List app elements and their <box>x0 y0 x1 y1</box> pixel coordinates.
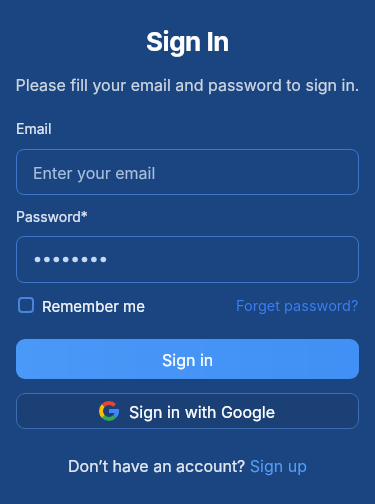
staticText: Sign in <box>162 350 214 369</box>
staticText: Enter your email <box>33 163 156 182</box>
staticText: Please fill your email and password to s… <box>0 75 375 94</box>
staticText: Sign in with Google <box>129 402 276 421</box>
staticText: Don’t have an account? Sign up <box>0 456 375 475</box>
staticText: Forget password? <box>236 297 359 315</box>
staticText: Email <box>16 120 52 137</box>
staticText: Password* <box>16 208 88 225</box>
staticText: Sign In <box>0 26 375 57</box>
staticText: Remember me <box>42 297 145 315</box>
